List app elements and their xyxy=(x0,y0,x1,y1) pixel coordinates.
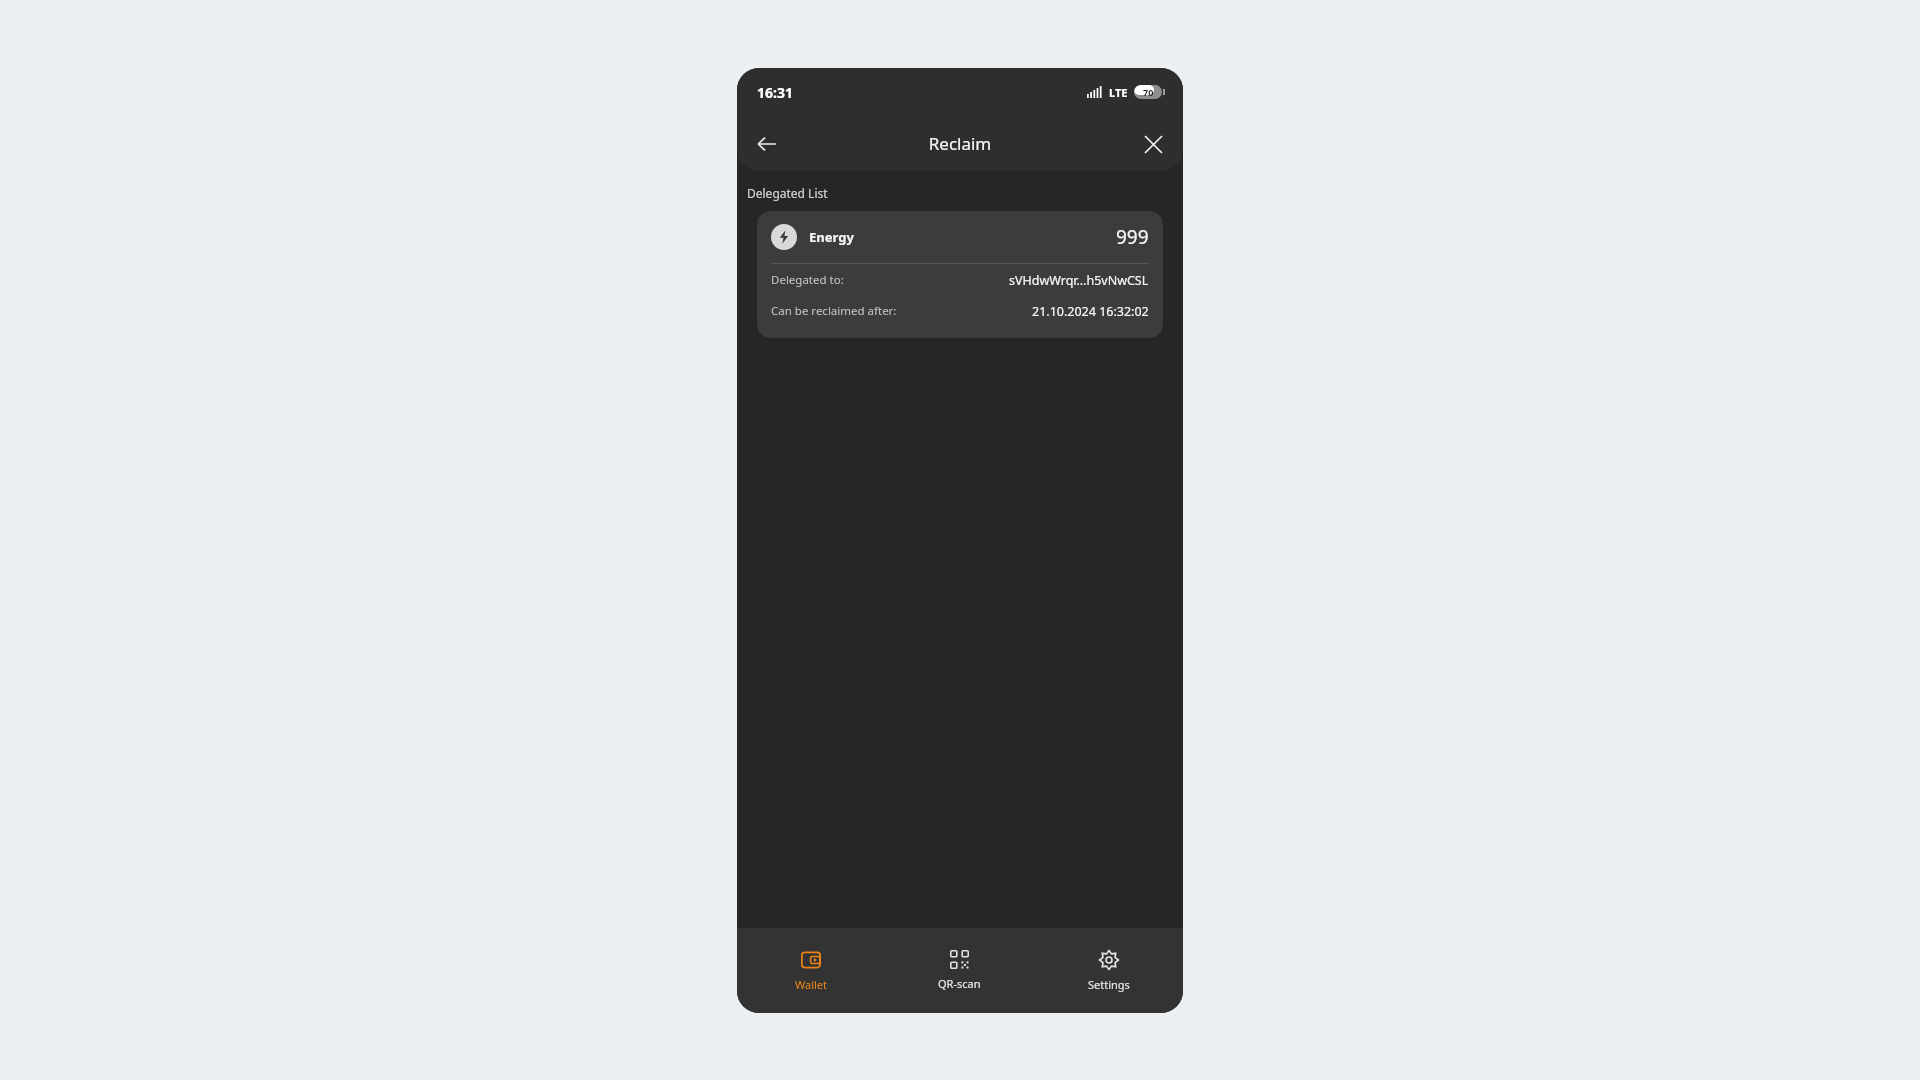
button[interactable]: Close xyxy=(1133,124,1173,164)
staticText: sVHdwWrqr…h5vNwCSL xyxy=(1009,272,1149,289)
staticText: Wallet xyxy=(795,977,828,992)
staticText: 21.10.2024 16:32:02 xyxy=(1032,303,1149,320)
staticText: Energy xyxy=(809,228,854,246)
staticText: 16:31 xyxy=(757,83,793,102)
staticText: 70 xyxy=(1143,86,1154,98)
staticText: Settings xyxy=(1088,977,1130,992)
button[interactable]: Settings xyxy=(1034,928,1183,1013)
staticText: LTE xyxy=(1109,85,1128,100)
button[interactable]: Back xyxy=(747,124,787,164)
staticText: Reclaim xyxy=(787,132,1133,155)
staticText: Delegated List xyxy=(747,185,828,201)
button[interactable]: QR-scan xyxy=(885,928,1034,1013)
staticText: QR-scan xyxy=(938,976,981,991)
button[interactable]: Energy xyxy=(757,211,1163,338)
button[interactable]: Wallet xyxy=(737,928,885,1013)
staticText: Delegated to: xyxy=(771,272,844,288)
staticText: Can be reclaimed after: xyxy=(771,303,897,319)
staticText: 999 xyxy=(1116,224,1149,250)
